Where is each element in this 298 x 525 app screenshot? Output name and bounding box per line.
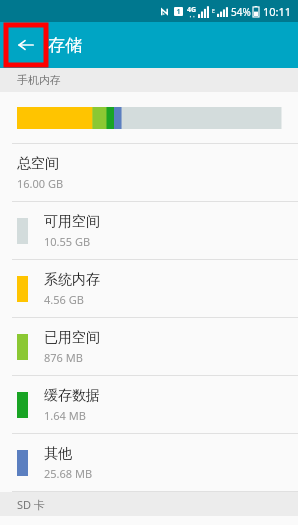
staticText: 876 MB xyxy=(44,350,83,365)
staticText: 手机内存 xyxy=(17,73,61,87)
staticText: 1 xyxy=(176,7,181,16)
staticText: 54% xyxy=(231,5,251,19)
staticText: 系统内存 xyxy=(44,271,100,289)
staticText: SD 卡 xyxy=(17,497,45,512)
staticText: 可用空间 xyxy=(44,213,100,231)
staticText: 10:11 xyxy=(263,4,292,19)
staticText: 25.68 MB xyxy=(44,466,93,481)
button[interactable]: Back xyxy=(8,27,44,63)
button[interactable]: 系统内存 xyxy=(0,260,298,317)
button[interactable]: 可用空间 xyxy=(0,202,298,259)
staticText: 10.55 GB xyxy=(44,234,91,249)
staticText: 4G xyxy=(187,5,197,15)
staticText: 4.56 GB xyxy=(44,292,84,307)
staticText: 已用空间 xyxy=(44,329,100,347)
button[interactable]: 总空间 xyxy=(0,144,298,201)
button[interactable]: 已用空间 xyxy=(0,318,298,375)
staticText: 缓存数据 xyxy=(44,387,100,405)
staticText: 16.00 GB xyxy=(17,176,64,191)
staticText: 存储 xyxy=(48,35,82,56)
staticText: 总空间 xyxy=(17,155,59,173)
button[interactable]: 其他 xyxy=(0,434,298,491)
staticText: 其他 xyxy=(44,445,72,463)
button[interactable]: 缓存数据 xyxy=(0,376,298,433)
staticText: E xyxy=(212,8,215,15)
staticText: 1.64 MB xyxy=(44,408,86,423)
